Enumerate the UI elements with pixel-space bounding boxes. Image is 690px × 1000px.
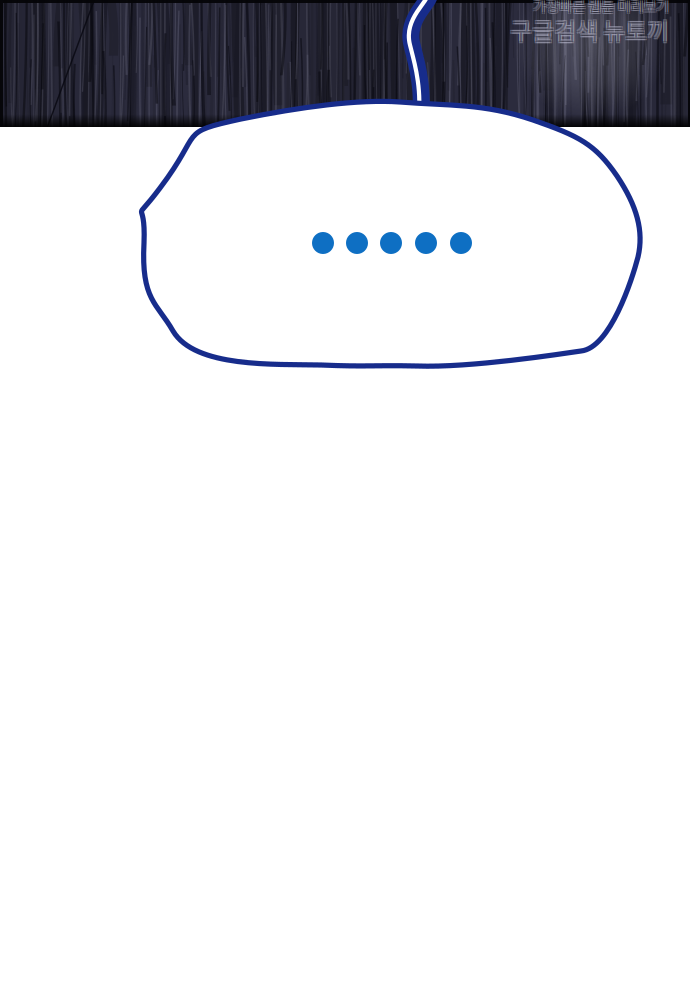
staticText: 구글검색 뉴토끼 xyxy=(511,11,670,46)
staticText: 가장빠른 웹툰 미리보기 xyxy=(532,0,668,15)
staticText: 가장빠른 웹툰 미리보기 xyxy=(534,0,670,17)
staticText: 구글검색 뉴토끼 xyxy=(510,12,669,47)
staticText: 가장빠른 웹툰 미리보기 xyxy=(532,0,668,17)
staticText: 구글검색 뉴토끼 xyxy=(509,11,668,46)
staticText: 가장빠른 웹툰 미리보기 xyxy=(534,0,670,15)
staticText: 구글검색 뉴토끼 xyxy=(511,13,670,48)
button[interactable]: Comic panel: speech balloon with an elli… xyxy=(0,0,690,1000)
staticText: 구글검색 뉴토끼 xyxy=(509,13,668,48)
staticText: 가장빠른 웹툰 미리보기 xyxy=(533,0,669,16)
